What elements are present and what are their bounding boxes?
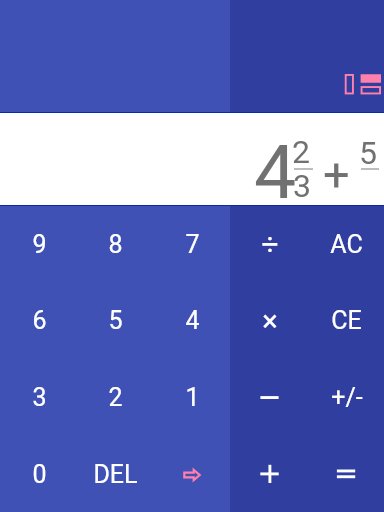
- button[interactable]: 2: [76, 358, 153, 435]
- staticText: 3: [293, 167, 311, 205]
- button[interactable]: 1: [153, 358, 230, 435]
- staticText: 1: [185, 383, 200, 412]
- button[interactable]: AC: [307, 205, 384, 281]
- button[interactable]: 6: [0, 281, 76, 358]
- button[interactable]: CE: [307, 281, 384, 358]
- button[interactable]: 7: [153, 205, 230, 281]
- staticText: 7: [185, 230, 200, 259]
- staticText: +: [323, 147, 350, 202]
- button[interactable]: 4: [153, 281, 230, 358]
- staticText: ×: [262, 304, 278, 338]
- staticText: 0: [32, 460, 47, 489]
- button[interactable]: 5: [76, 281, 153, 358]
- staticText: 4: [254, 128, 297, 216]
- staticText: 6: [32, 306, 47, 335]
- staticText: 8: [108, 230, 123, 259]
- staticText: 5: [108, 306, 123, 335]
- staticText: 2: [292, 133, 310, 171]
- staticText: 9: [32, 230, 47, 259]
- button[interactable]: 3: [0, 358, 76, 435]
- staticText: 4: [185, 306, 200, 335]
- button[interactable]: ÷: [230, 205, 307, 281]
- staticText: DEL: [93, 460, 138, 489]
- button[interactable]: 0: [0, 435, 76, 512]
- button[interactable]: +/-: [307, 358, 384, 435]
- staticText: AC: [330, 230, 363, 259]
- button[interactable]: Equals: [307, 435, 384, 512]
- button[interactable]: 8: [76, 205, 153, 281]
- button[interactable]: Layout: [336, 65, 382, 103]
- button[interactable]: DEL: [76, 435, 153, 512]
- staticText: ÷: [261, 227, 279, 262]
- staticText: 5: [359, 134, 377, 172]
- button[interactable]: ×: [230, 281, 307, 358]
- button[interactable]: 9: [0, 205, 76, 281]
- staticText: 3: [32, 383, 47, 412]
- button[interactable]: Next: [153, 435, 230, 512]
- staticText: +/-: [331, 383, 363, 412]
- button[interactable]: Plus: [230, 435, 307, 512]
- staticText: 2: [108, 383, 123, 412]
- button[interactable]: Minus: [230, 358, 307, 435]
- staticText: CE: [331, 306, 362, 335]
